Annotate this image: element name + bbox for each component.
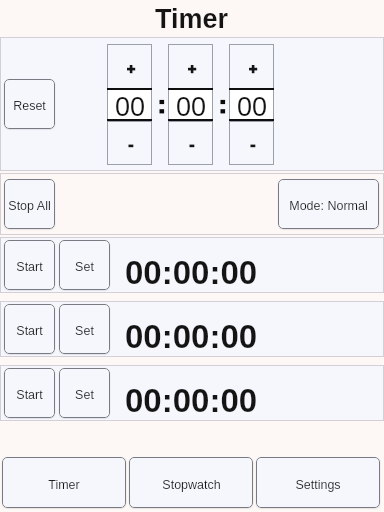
button[interactable]: Stopwatch — [129, 457, 253, 508]
button[interactable] — [229, 44, 274, 89]
staticText: 00:00:00 — [125, 318, 258, 355]
button[interactable]: Reset — [4, 79, 55, 129]
staticText: Reset — [13, 99, 46, 113]
staticText: 00:00:00 — [125, 254, 258, 291]
button[interactable]: Set — [59, 240, 110, 290]
button[interactable]: Stop All — [4, 179, 55, 229]
staticText: Set — [75, 388, 94, 402]
staticText: Timer — [48, 478, 80, 492]
button[interactable]: Timer — [2, 457, 126, 508]
button[interactable]: Start — [4, 304, 55, 354]
button[interactable]: Start — [4, 368, 55, 418]
staticText: Start — [16, 388, 43, 402]
staticText: Start — [16, 260, 43, 274]
staticText: 00:00:00 — [125, 382, 258, 419]
staticText: Set — [75, 324, 94, 338]
staticText: 00 — [176, 92, 207, 122]
button[interactable] — [168, 44, 213, 89]
staticText: Stop All — [8, 199, 51, 213]
staticText: Settings — [295, 478, 341, 492]
staticText: Start — [16, 324, 43, 338]
staticText: 00 — [115, 92, 146, 122]
staticText: Stopwatch — [162, 478, 221, 492]
button[interactable]: Set — [59, 368, 110, 418]
staticText: 00 — [237, 92, 268, 122]
button[interactable]: Settings — [256, 457, 380, 508]
button[interactable] — [107, 121, 152, 165]
button[interactable]: Mode: Normal — [278, 179, 379, 229]
button[interactable]: Start — [4, 240, 55, 290]
button[interactable] — [229, 121, 274, 165]
button[interactable] — [168, 121, 213, 165]
button[interactable]: Set — [59, 304, 110, 354]
staticText: Set — [75, 260, 94, 274]
staticText: Mode: Normal — [289, 199, 368, 213]
staticText: Timer — [155, 4, 229, 34]
button[interactable] — [107, 44, 152, 89]
